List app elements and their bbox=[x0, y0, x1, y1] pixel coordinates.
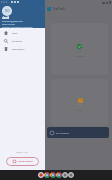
staticText: 56991137228 bbox=[2, 23, 15, 26]
button[interactable]: Cerrar sesion bbox=[6, 157, 39, 166]
button[interactable]: 1 bbox=[51, 23, 108, 75]
staticText: Conectado bbox=[74, 55, 85, 58]
staticText: Busqueda bbox=[12, 40, 22, 43]
button[interactable]: App bbox=[50, 172, 56, 178]
button[interactable]: 1 bbox=[51, 79, 108, 126]
staticText: Empresa: Transportes Ossandon bbox=[2, 26, 33, 29]
button[interactable]: Sin conexion bbox=[47, 127, 109, 138]
staticText: Bateria bbox=[76, 109, 84, 112]
button[interactable]: Seguimiento bbox=[0, 45, 45, 53]
staticText: Version 1.0.3 bbox=[16, 151, 29, 154]
button[interactable]: App bbox=[62, 172, 68, 178]
staticText: DO bbox=[5, 9, 10, 13]
button[interactable]: Inicio bbox=[0, 29, 45, 37]
staticText: TrakTrack bbox=[53, 7, 65, 11]
staticText: david bbox=[2, 16, 10, 20]
button[interactable]: App bbox=[56, 172, 62, 178]
staticText: Inicio bbox=[12, 32, 18, 35]
button[interactable]: App bbox=[44, 172, 50, 178]
button[interactable]: Busqueda bbox=[0, 37, 45, 45]
staticText: Seguimiento bbox=[12, 48, 25, 51]
staticText: Sin conexion bbox=[56, 132, 69, 135]
button[interactable]: App bbox=[68, 172, 74, 178]
staticText: ossandon@gmail.com bbox=[2, 20, 23, 23]
staticText: 1 bbox=[79, 50, 81, 54]
staticText: 1 bbox=[79, 104, 81, 108]
button[interactable]: App bbox=[38, 172, 44, 178]
staticText: Cerrar sesion bbox=[18, 160, 33, 163]
